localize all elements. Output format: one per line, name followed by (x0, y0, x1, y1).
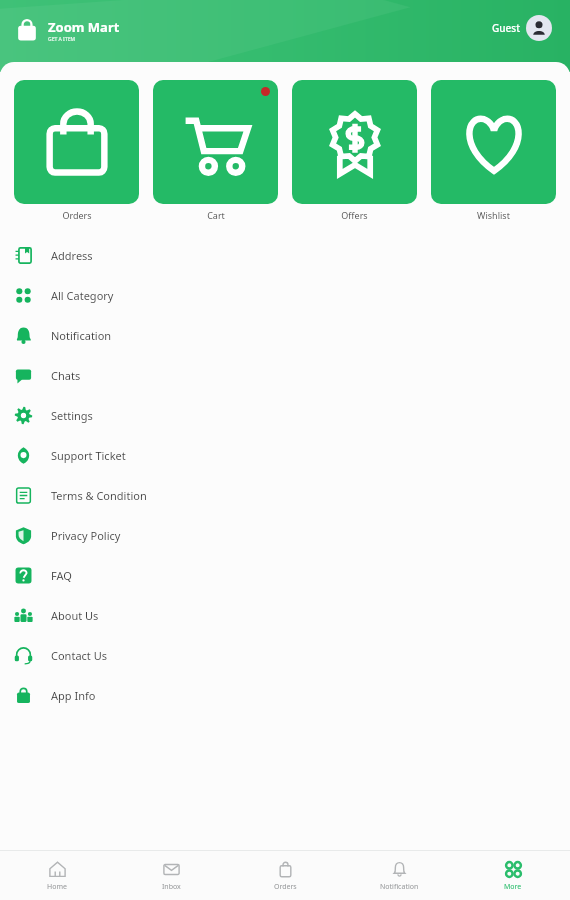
staticText: Inbox (162, 882, 181, 892)
button[interactable]: Support Ticket (0, 435, 570, 475)
staticText: Wishlist (477, 209, 510, 221)
staticText: Cart (207, 209, 225, 221)
staticText: Chats (51, 368, 81, 383)
button[interactable]: Wishlist (431, 80, 556, 221)
button[interactable]: More (456, 860, 570, 892)
button[interactable]: App Info (0, 675, 570, 715)
staticText: Terms & Condition (51, 488, 147, 503)
button[interactable]: Guest (492, 15, 552, 41)
button[interactable]: Privacy Policy (0, 515, 570, 555)
button[interactable]: Notification (0, 315, 570, 355)
button[interactable]: Notification (342, 860, 456, 892)
staticText: Guest (492, 21, 520, 35)
staticText: Notification (51, 328, 112, 343)
button[interactable]: Inbox (114, 860, 228, 892)
button[interactable]: Terms & Condition (0, 475, 570, 515)
staticText: About Us (51, 608, 99, 623)
staticText: Zoom Mart (48, 18, 120, 36)
staticText: Contact Us (51, 648, 107, 663)
staticText: GET A ITEM (48, 36, 76, 43)
button[interactable]: Address (0, 235, 570, 275)
button[interactable]: All Category (0, 275, 570, 315)
staticText: App Info (51, 688, 96, 703)
button[interactable]: Cart (153, 80, 278, 221)
button[interactable]: Orders (228, 860, 342, 892)
staticText: More (504, 882, 522, 892)
staticText: Settings (51, 408, 93, 423)
staticText: Support Ticket (51, 448, 126, 463)
button[interactable]: Chats (0, 355, 570, 395)
staticText: Address (51, 248, 93, 263)
staticText: Home (47, 882, 67, 892)
button[interactable]: Orders (14, 80, 139, 221)
button[interactable]: FAQ (0, 555, 570, 595)
button[interactable]: Offers (292, 80, 417, 221)
staticText: FAQ (51, 568, 72, 583)
button[interactable]: Zoom Mart (14, 17, 120, 43)
staticText: Privacy Policy (51, 528, 121, 543)
button[interactable]: Settings (0, 395, 570, 435)
button[interactable]: Contact Us (0, 635, 570, 675)
staticText: Orders (62, 209, 92, 221)
staticText: All Category (51, 288, 114, 303)
button[interactable]: Home (0, 860, 114, 892)
button[interactable]: About Us (0, 595, 570, 635)
staticText: Offers (341, 209, 368, 221)
staticText: Notification (380, 882, 419, 892)
staticText: Orders (274, 882, 297, 892)
